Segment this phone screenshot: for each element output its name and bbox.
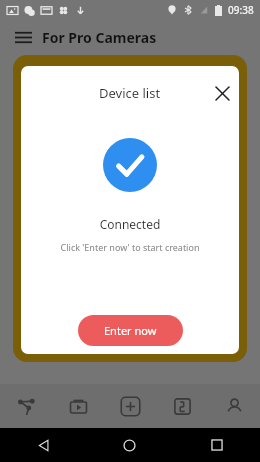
button[interactable]: Recent apps bbox=[173, 428, 260, 462]
staticText: Click 'Enter now' to start creation bbox=[21, 241, 239, 253]
button[interactable]: Open navigation menu bbox=[8, 22, 38, 52]
staticText: Device list bbox=[99, 84, 161, 102]
button[interactable]: Enter now bbox=[78, 315, 183, 346]
button[interactable]: Share bbox=[0, 384, 52, 428]
button[interactable]: Add bbox=[104, 384, 156, 428]
button[interactable]: Profile bbox=[208, 384, 260, 428]
button[interactable]: Back bbox=[0, 428, 86, 462]
staticText: Enter now bbox=[104, 323, 157, 338]
button[interactable]: Editor bbox=[156, 384, 208, 428]
staticText: 09:38 bbox=[228, 3, 254, 17]
staticText: For Pro Cameras bbox=[42, 28, 157, 47]
staticText: Connected bbox=[21, 216, 239, 232]
button[interactable]: Home bbox=[86, 428, 173, 462]
button[interactable]: Videos bbox=[52, 384, 104, 428]
button[interactable]: Close bbox=[209, 80, 235, 106]
